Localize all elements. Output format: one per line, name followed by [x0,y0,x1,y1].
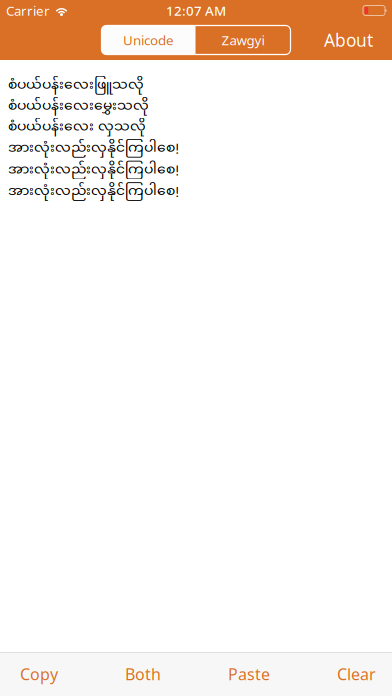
button[interactable]: Both [119,652,167,696]
button[interactable]: Clear [331,652,382,696]
staticText: About [324,28,373,51]
staticText: Paste [228,663,270,685]
button[interactable]: Paste [222,652,276,696]
button[interactable]: About [316,19,381,60]
button[interactable]: Copy [14,652,64,696]
staticText: စံပယ်ပန်းလေး လှသလို [8,118,146,137]
staticText: Zawgyi [221,31,264,49]
staticText: အားလုံးလည်းလှနိုင်ကြပါစေ! [8,182,179,201]
staticText: စံပယ်ပန်းလေးမွှေးသလို [8,97,149,116]
staticText: အားလုံးလည်းလှနိုင်ကြပါစေ! [8,139,179,158]
staticText: အားလုံးလည်းလှနိုင်ကြပါစေ! [8,160,179,180]
button[interactable]: Zawgyi [195,25,290,54]
staticText: Carrier [6,2,50,19]
staticText: Clear [337,663,376,685]
staticText: 12:07 AM [166,2,226,19]
staticText: Both [125,663,161,685]
staticText: Unicode [123,31,174,49]
staticText: စံပယ်ပန်းလေးဖြူသလို [8,76,144,95]
staticText: Copy [20,663,58,685]
button[interactable]: Unicode [101,25,195,54]
